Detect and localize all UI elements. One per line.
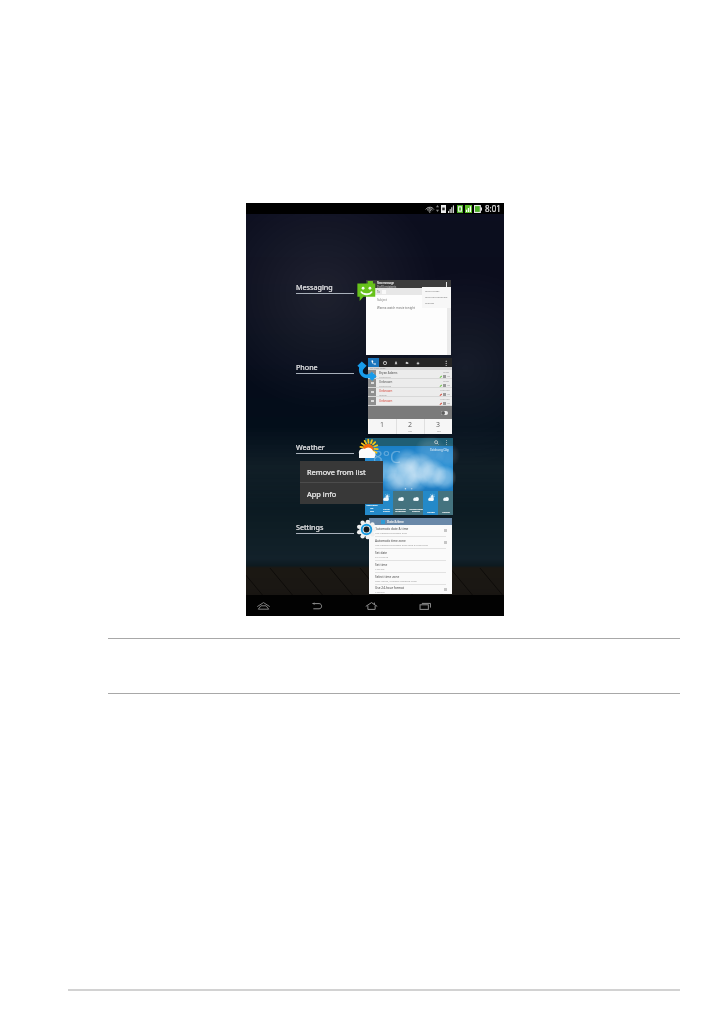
staticText: Use network-provided time (375, 531, 407, 534)
staticText: 2 (408, 420, 413, 430)
staticText: Mobile (379, 393, 387, 396)
staticText: 1:00 am (375, 567, 385, 570)
staticText: Cloudy (442, 510, 450, 513)
staticText: Use 24-hour format (375, 586, 404, 590)
staticText: Insert text template (425, 295, 448, 298)
button[interactable]: App info (300, 483, 383, 504)
staticText: ALL CALL LOGS (370, 367, 386, 370)
button[interactable]: Remove from list (300, 461, 383, 482)
staticText: Use network-provided time zone & time zo… (375, 543, 428, 546)
staticText: call (447, 375, 450, 378)
staticText: Messaging (296, 282, 333, 292)
staticText: Unknown (379, 380, 393, 384)
staticText: Subject (377, 298, 387, 302)
staticText: Insert smiley (425, 289, 440, 292)
staticText: 1 (380, 420, 385, 430)
staticText: Set date (375, 551, 388, 555)
staticText: Wanna watch movie tonight (377, 306, 415, 310)
staticText: GMT+08:00, Chinese Standard Time (375, 579, 417, 582)
staticText: Set time (375, 563, 388, 567)
staticText: call (447, 402, 450, 405)
staticText: New message (377, 281, 394, 285)
staticText: 12:33 am (440, 398, 450, 401)
staticText: ⋮ (443, 359, 449, 366)
staticText: Cloudy today, stay tuned for rain (365, 501, 379, 513)
staticText: Automatic time zone (375, 539, 406, 543)
staticText: unfavorable storms (409, 507, 423, 513)
button[interactable]: Back (303, 595, 331, 616)
staticText: Bryan Adams (379, 371, 398, 375)
staticText: scattered snowfalls (395, 507, 406, 513)
staticText: ⋮ (444, 439, 450, 445)
button[interactable]: ⋮ (365, 438, 453, 515)
staticText: Contact #1 (379, 375, 392, 378)
staticText: Colder (427, 510, 435, 513)
staticText: App info (307, 489, 337, 499)
staticText: 1:00 pm (375, 590, 385, 593)
staticText: Today (443, 380, 450, 383)
staticText: DEF (437, 430, 441, 433)
button[interactable]: Launcher (249, 595, 277, 616)
staticText: Contact #2 (379, 384, 392, 387)
staticText: 12:33 am (440, 389, 450, 392)
staticText: Remove from list (307, 467, 366, 477)
staticText: Automatic date & time (375, 527, 409, 531)
staticText: Phone (296, 362, 318, 372)
staticText: Taichung City (430, 448, 449, 452)
staticText: Unknown (379, 399, 393, 403)
staticText: Weather (296, 442, 325, 452)
staticText: 01/12/2015 (375, 555, 389, 558)
button[interactable]: Home (357, 595, 385, 616)
staticText: To (377, 290, 381, 294)
staticText: ABC (408, 430, 413, 433)
staticText: Date & time (387, 520, 404, 524)
staticText: 3 (436, 420, 441, 430)
staticText: Select time zone (375, 575, 400, 579)
staticText: Partly sunny (383, 507, 390, 513)
staticText: Settings (425, 301, 435, 304)
staticText: call (447, 393, 450, 396)
button[interactable]: Date & time (369, 518, 452, 594)
button[interactable]: New message (366, 280, 451, 355)
staticText: Settings (296, 522, 324, 532)
staticText: 8:01 (485, 203, 501, 214)
staticText: Today (443, 371, 450, 374)
staticText: 0 of 0 recipients (377, 285, 397, 288)
staticText: Unknown (379, 389, 393, 393)
staticText: 8°C (373, 445, 401, 468)
button[interactable]: Recents (411, 595, 439, 616)
button[interactable]: ⋮ (368, 358, 452, 434)
staticText: call (447, 384, 450, 387)
